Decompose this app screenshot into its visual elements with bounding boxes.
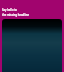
staticText: Say hello to	[2, 8, 17, 12]
staticText: the missing headline	[2, 13, 29, 17]
